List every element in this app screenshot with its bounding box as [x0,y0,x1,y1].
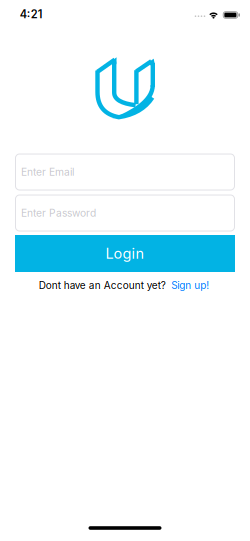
staticText: Enter Email [21,166,74,178]
button[interactable]: Sign up! [171,279,209,291]
staticText: Login [105,245,144,262]
button[interactable]: Login [15,235,235,272]
staticText: 4:21 [20,7,43,21]
staticText: Sign up! [171,279,209,291]
staticText: Dont have an Account yet? [39,279,166,291]
staticText: Enter Password [21,207,96,219]
